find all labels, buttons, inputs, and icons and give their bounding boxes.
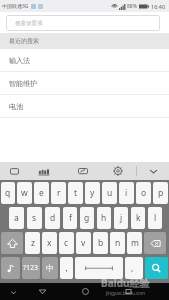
- button[interactable]: 。: [125, 257, 143, 279]
- staticText: d: [50, 212, 56, 224]
- button[interactable]: g: [80, 207, 94, 229]
- staticText: 智能维护: [9, 79, 37, 88]
- button[interactable]: q: [1, 182, 15, 204]
- button[interactable]: Home: [77, 283, 94, 300]
- staticText: o: [141, 187, 147, 199]
- button[interactable]: Shift: [1, 232, 23, 254]
- staticText: 88%: [127, 3, 137, 10]
- staticText: r: [57, 187, 61, 199]
- staticText: ?123: [23, 263, 39, 273]
- staticText: n: [115, 237, 121, 249]
- staticText: 电池: [9, 102, 23, 111]
- button[interactable]: Voice input: [1, 257, 20, 279]
- staticText: k: [136, 212, 141, 224]
- staticText: 。: [130, 263, 139, 274]
- button[interactable]: 输入法: [0, 49, 169, 72]
- button[interactable]: u: [102, 182, 117, 204]
- staticText: t: [74, 187, 78, 199]
- button[interactable]: m: [127, 232, 142, 254]
- staticText: Baidu经验: [101, 276, 150, 290]
- button[interactable]: Handwriting: [75, 163, 91, 179]
- button[interactable]: f: [63, 207, 77, 229]
- button[interactable]: d: [45, 207, 60, 229]
- button[interactable]: Clipboard: [6, 163, 22, 179]
- staticText: s: [32, 212, 37, 224]
- button[interactable]: l: [148, 207, 162, 229]
- staticText: y: [90, 187, 95, 199]
- button[interactable]: w: [17, 182, 32, 204]
- button[interactable]: x: [42, 232, 57, 254]
- button[interactable]: i: [119, 182, 134, 204]
- button[interactable]: c: [59, 232, 74, 254]
- button[interactable]: 电池: [0, 95, 169, 118]
- staticText: f: [69, 212, 72, 224]
- staticText: 输入法: [9, 56, 30, 65]
- button[interactable]: ?123: [22, 257, 40, 279]
- button[interactable]: Space: [75, 257, 123, 279]
- button[interactable]: k: [131, 207, 145, 229]
- button[interactable]: n: [110, 232, 125, 254]
- staticText: ，: [62, 263, 71, 274]
- staticText: h: [101, 212, 107, 224]
- staticText: e: [39, 187, 44, 199]
- staticText: p: [158, 187, 164, 199]
- staticText: a: [14, 212, 19, 224]
- button[interactable]: j: [114, 207, 128, 229]
- staticText: m: [131, 237, 139, 249]
- button[interactable]: h: [97, 207, 111, 229]
- button[interactable]: Recents: [120, 283, 137, 300]
- staticText: 搜索设置项: [15, 20, 43, 27]
- staticText: u: [107, 187, 113, 199]
- button[interactable]: Backspace: [144, 232, 166, 254]
- button[interactable]: ，: [60, 257, 73, 279]
- button[interactable]: o: [136, 182, 151, 204]
- staticText: 中国联通3G: [2, 3, 29, 10]
- staticText: q: [5, 187, 11, 199]
- button[interactable]: y: [85, 182, 100, 204]
- button[interactable]: Back: [34, 283, 51, 300]
- button[interactable]: e: [34, 182, 49, 204]
- button[interactable]: Hide keyboard: [144, 162, 162, 180]
- button[interactable]: v: [76, 232, 91, 254]
- staticText: 中: [46, 263, 54, 273]
- staticText: x: [47, 237, 52, 249]
- button[interactable]: a: [9, 207, 24, 229]
- staticText: 最近的搜索: [9, 37, 39, 45]
- staticText: 16:40: [151, 3, 166, 10]
- button[interactable]: 搜索设置项: [6, 15, 160, 31]
- button[interactable]: z: [25, 232, 40, 254]
- staticText: w: [21, 187, 28, 199]
- button[interactable]: Hide keyboard: [6, 285, 20, 299]
- staticText: i: [125, 187, 128, 199]
- staticText: c: [64, 237, 69, 249]
- button[interactable]: Search: [145, 257, 168, 279]
- button[interactable]: s: [27, 207, 42, 229]
- staticText: j: [120, 212, 123, 224]
- button[interactable]: Settings: [110, 163, 126, 179]
- staticText: z: [31, 237, 35, 249]
- button[interactable]: p: [153, 182, 168, 204]
- staticText: jingyan.baidu.com: [106, 290, 145, 296]
- button[interactable]: r: [51, 182, 66, 204]
- button[interactable]: t: [68, 182, 83, 204]
- button[interactable]: b: [93, 232, 108, 254]
- staticText: l: [154, 212, 157, 224]
- staticText: g: [84, 212, 90, 224]
- staticText: v: [81, 237, 86, 249]
- button[interactable]: Baidu input: [35, 162, 53, 180]
- button[interactable]: 智能维护: [0, 72, 169, 95]
- staticText: b: [98, 237, 104, 249]
- button[interactable]: 中: [42, 257, 58, 279]
